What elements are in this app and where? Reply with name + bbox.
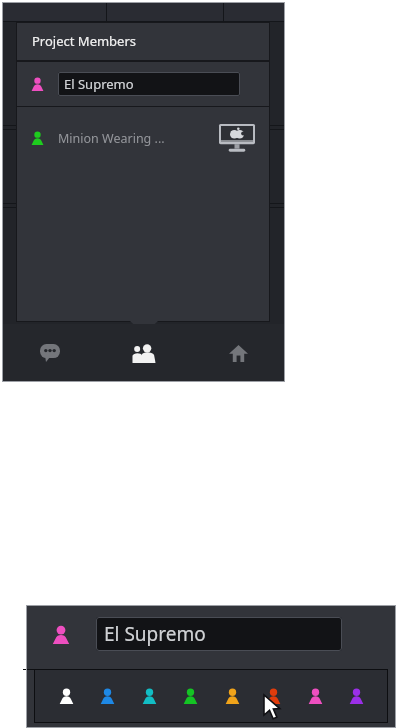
button[interactable]: Colour — [255, 678, 291, 714]
button[interactable]: Colour — [89, 678, 125, 714]
staticText: El Supremo — [104, 621, 206, 647]
button[interactable]: Colour — [338, 678, 374, 714]
button[interactable]: El Supremo — [26, 605, 396, 663]
staticText: Minion Wearing ... — [58, 130, 218, 147]
staticText: El Supremo — [64, 75, 134, 93]
button[interactable]: Home — [191, 324, 285, 382]
button[interactable]: Colour — [297, 678, 333, 714]
button[interactable]: Colour — [214, 678, 250, 714]
button[interactable]: Colour — [48, 678, 84, 714]
button[interactable]: Colour — [131, 678, 167, 714]
staticText: Project Members — [32, 32, 137, 50]
button[interactable]: El Supremo — [16, 62, 270, 106]
button[interactable]: People — [97, 324, 191, 382]
button[interactable]: Messages — [2, 324, 97, 382]
button[interactable]: Colour — [172, 678, 208, 714]
button[interactable]: Minion Wearing ... — [16, 107, 270, 169]
